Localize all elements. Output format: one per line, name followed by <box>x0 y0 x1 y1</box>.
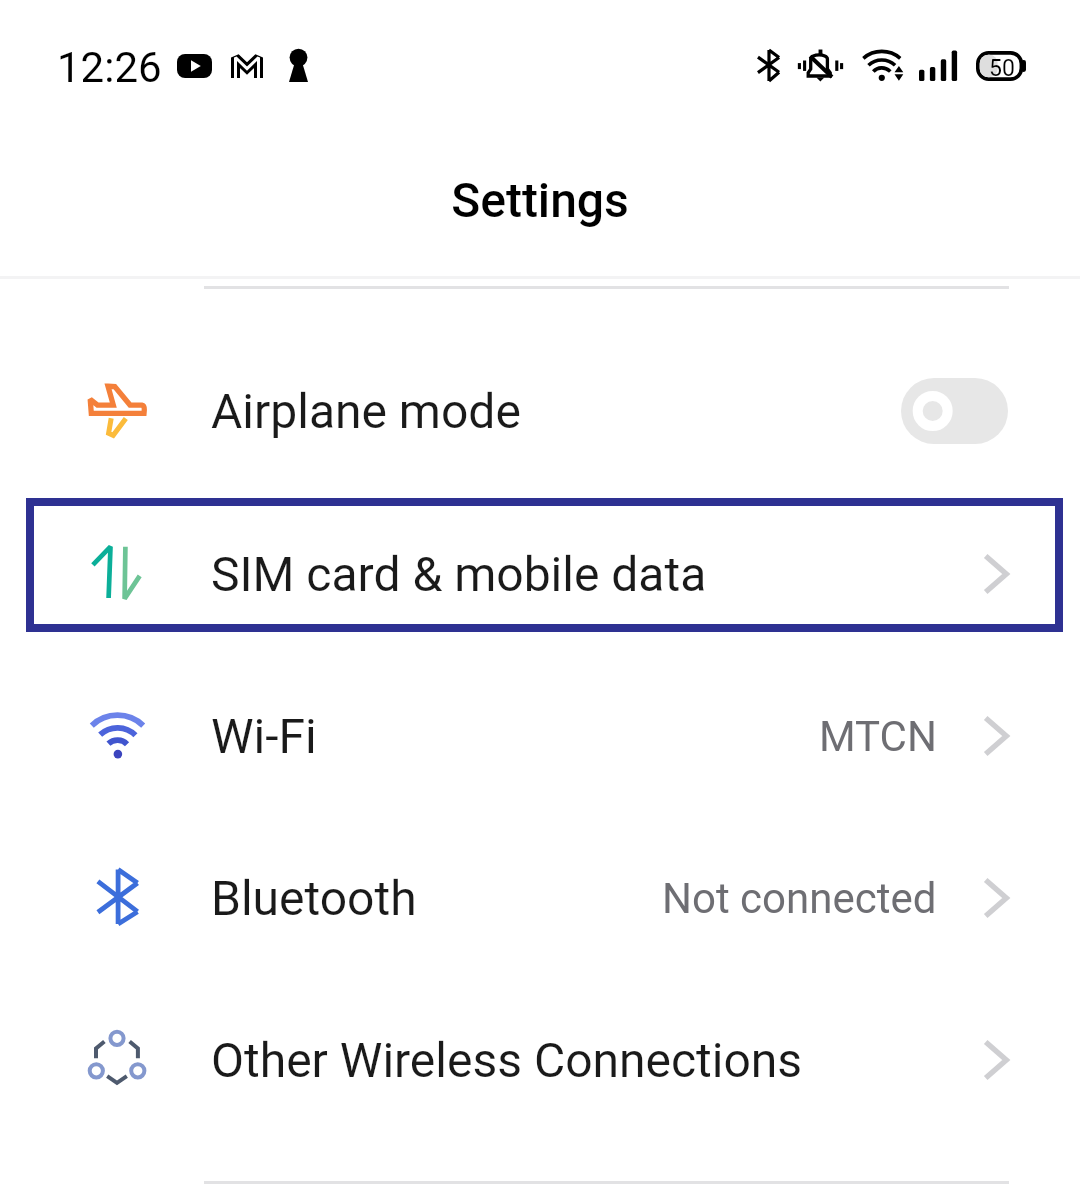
staticText: SIM card & mobile data <box>211 546 707 602</box>
staticText: 50 <box>989 55 1015 82</box>
button[interactable]: Bluetooth <box>0 817 1080 979</box>
staticText: Other Wireless Connections <box>211 1032 803 1088</box>
button[interactable]: Other Wireless Connections <box>0 979 1080 1141</box>
staticText: Wi-Fi <box>211 708 317 764</box>
staticText: Not connected <box>662 874 937 923</box>
other: Open Wi-Fi <box>983 714 1009 758</box>
staticText: Airplane mode <box>211 383 521 439</box>
staticText: Settings <box>0 172 1080 228</box>
other: Open Other Wireless Connections <box>983 1038 1009 1082</box>
other: Open SIM card & mobile data <box>983 552 1009 596</box>
staticText: Bluetooth <box>211 870 417 926</box>
button[interactable]: Wi-Fi <box>0 655 1080 817</box>
other: Open Bluetooth <box>983 876 1009 920</box>
staticText: 12:26 <box>57 43 162 92</box>
button[interactable]: SIM card & mobile data <box>0 493 1080 655</box>
button[interactable]: Airplane mode <box>0 330 1080 492</box>
button[interactable]: Airplane mode toggle, off <box>901 378 1008 444</box>
staticText: MTCN <box>819 712 937 761</box>
